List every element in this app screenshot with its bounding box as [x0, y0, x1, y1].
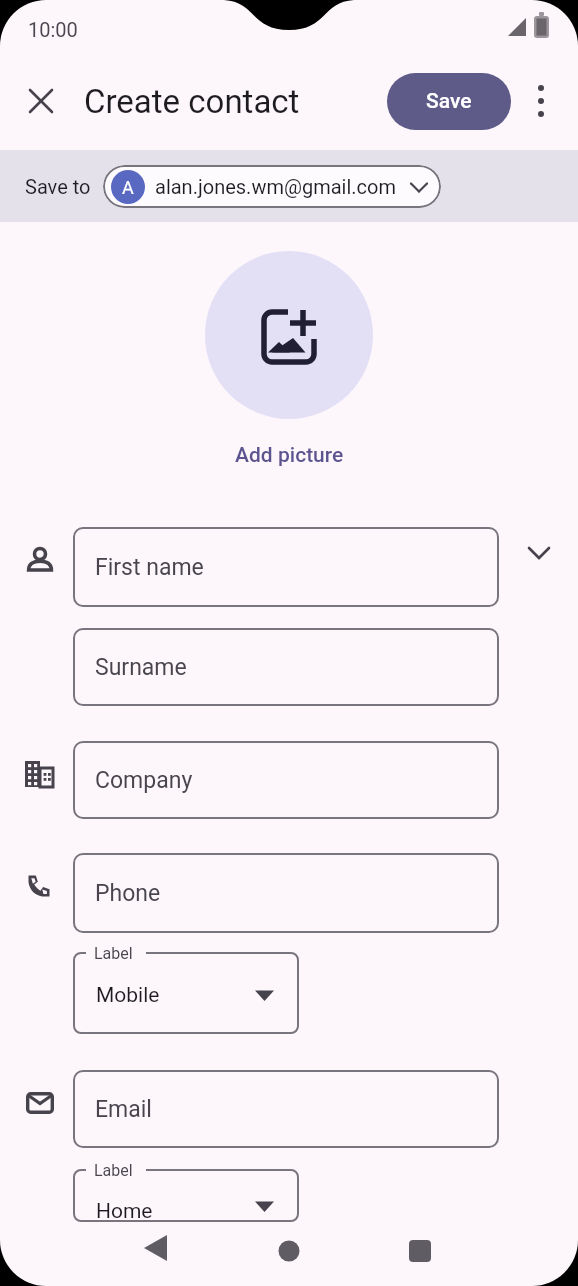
button[interactable]: Save [387, 73, 511, 130]
button[interactable] [259, 1233, 319, 1275]
staticText: Label [94, 944, 133, 962]
button[interactable] [73, 1169, 299, 1222]
button[interactable] [390, 1233, 450, 1275]
staticText: Mobile [96, 983, 160, 1008]
button[interactable] [125, 1233, 185, 1275]
staticText: Add picture [235, 443, 344, 468]
button[interactable] [73, 952, 299, 1034]
button[interactable]: Surname [73, 628, 499, 706]
button[interactable]: Email [73, 1070, 499, 1148]
button[interactable] [520, 534, 558, 572]
staticText: Create contact [84, 82, 300, 121]
button[interactable]: A [103, 165, 441, 208]
button[interactable]: Add picture [205, 438, 373, 472]
button[interactable]: Phone [73, 853, 499, 933]
staticText: Surname [95, 654, 187, 681]
staticText: Email [95, 1096, 152, 1123]
staticText: Label [94, 1161, 133, 1179]
staticText: alan.jones.wm@gmail.com [155, 175, 396, 198]
button[interactable]: First name [73, 527, 499, 607]
staticText: Company [95, 767, 193, 794]
staticText: First name [95, 554, 204, 581]
button[interactable] [524, 84, 558, 118]
staticText: Phone [95, 880, 161, 907]
staticText: Save to [25, 175, 91, 198]
button[interactable] [205, 251, 373, 419]
staticText: Home [96, 1199, 153, 1224]
staticText: A [122, 177, 134, 198]
button[interactable]: Company [73, 741, 499, 819]
staticText: 10:00 [28, 18, 78, 41]
staticText: Save [426, 89, 472, 114]
button[interactable] [22, 82, 60, 120]
